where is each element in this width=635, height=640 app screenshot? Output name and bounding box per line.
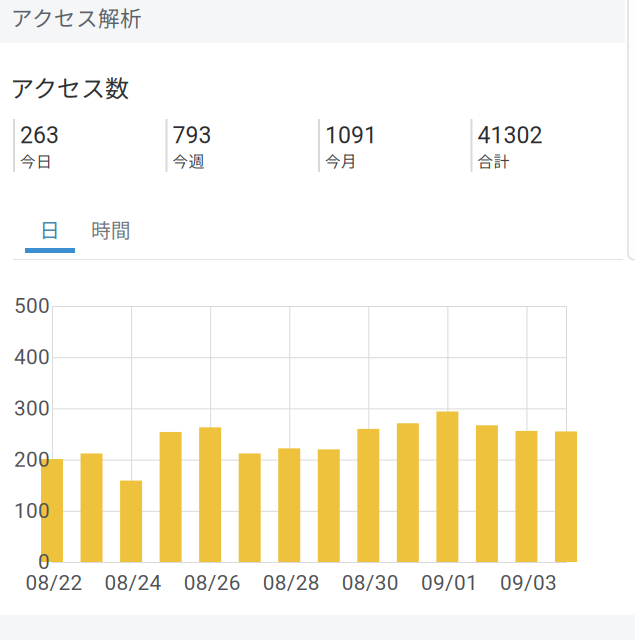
button[interactable]: 日 [25,208,75,254]
staticText: 08/24 [105,571,162,595]
staticText: 1091 [325,122,377,149]
staticText: 今日 [20,149,52,172]
staticText: アクセス解析 [11,1,142,33]
staticText: 日 [39,214,60,244]
staticText: 300 [14,396,50,421]
staticText: 08/22 [25,571,82,595]
staticText: 793 [172,122,211,149]
staticText: 08/28 [263,571,320,595]
staticText: 時間 [91,215,131,243]
staticText: 0 [38,550,50,574]
staticText: 09/01 [421,571,478,595]
staticText: 100 [14,499,50,523]
staticText: 合計 [477,149,509,172]
staticText: 今月 [325,149,357,172]
staticText: 08/30 [342,571,399,595]
button[interactable]: アクセス解析 [11,2,191,32]
staticText: 200 [14,447,50,472]
staticText: 今週 [172,149,204,172]
staticText: アクセス数 [10,69,129,104]
staticText: 263 [20,122,59,149]
button[interactable]: 時間 [86,208,136,254]
staticText: 08/26 [184,571,241,595]
staticText: 500 [14,294,50,318]
staticText: 41302 [477,122,542,149]
staticText: 09/03 [500,571,557,595]
staticText: 400 [14,345,50,369]
